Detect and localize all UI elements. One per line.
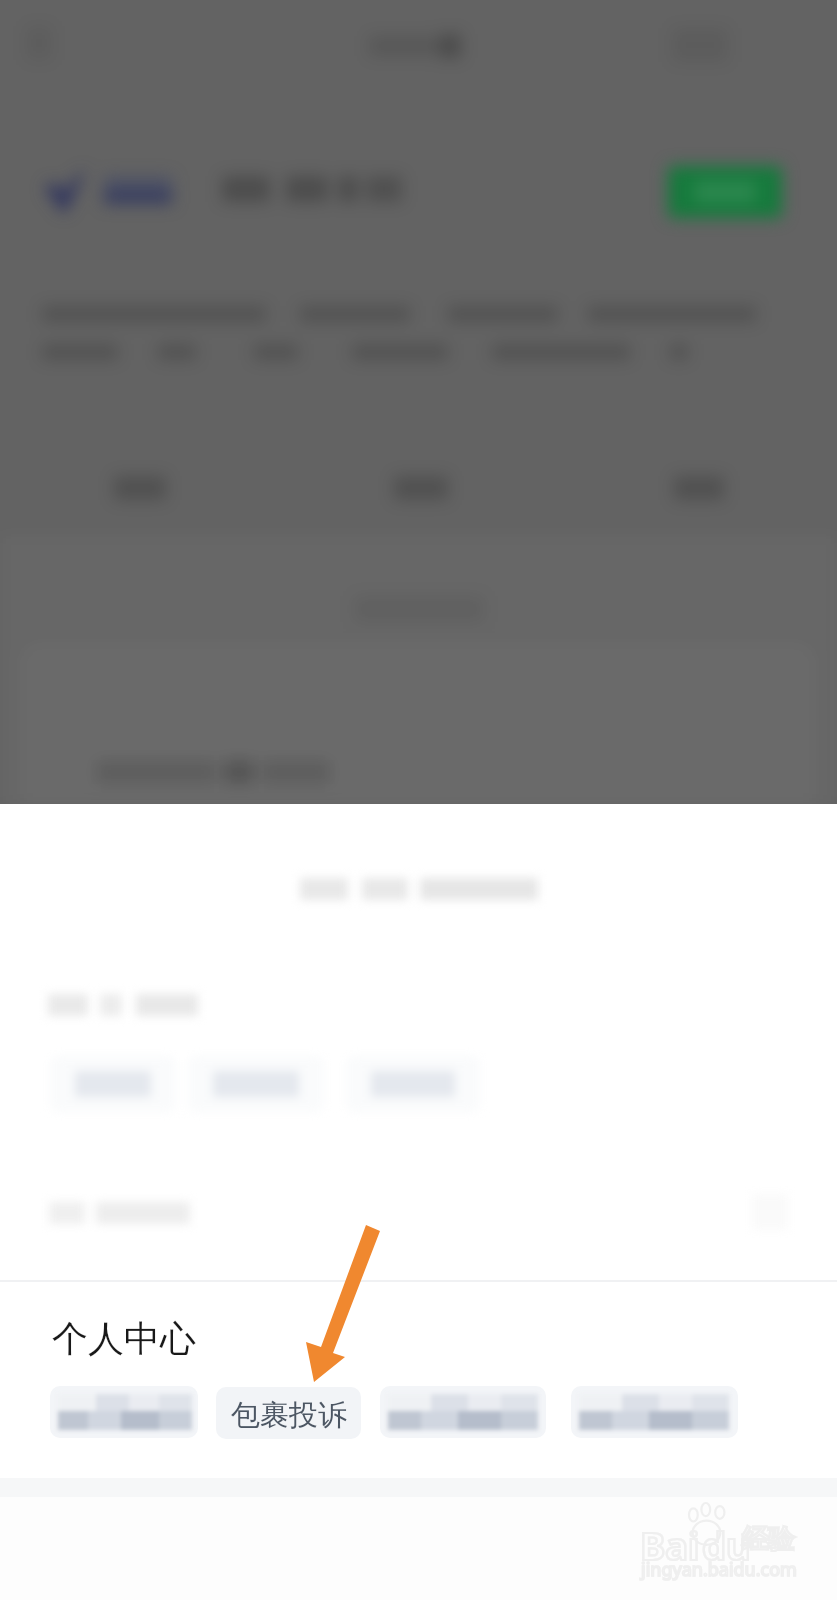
staticText: du — [702, 1519, 751, 1571]
staticText: 个人中心 — [52, 1316, 196, 1361]
button[interactable] — [346, 1056, 480, 1112]
staticText: 包裹投诉 — [231, 1397, 347, 1434]
button[interactable] — [50, 1386, 198, 1438]
staticText: 经验 — [742, 1523, 794, 1556]
staticText: Bai — [640, 1519, 700, 1571]
button[interactable] — [380, 1386, 546, 1438]
button[interactable]: 包裹投诉 — [216, 1387, 361, 1439]
button[interactable] — [668, 166, 782, 218]
staticText: jingyan.baidu.com — [641, 1557, 797, 1582]
button[interactable] — [188, 1056, 324, 1112]
button[interactable] — [571, 1386, 738, 1438]
button[interactable] — [50, 1056, 176, 1112]
